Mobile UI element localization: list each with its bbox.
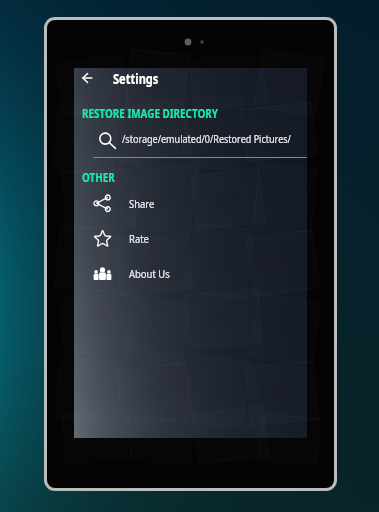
- staticText: Rate: [129, 231, 150, 246]
- button[interactable]: Rate: [74, 221, 307, 255]
- staticText: /storage/emulated/0/Restored Pictures/: [122, 132, 306, 146]
- staticText: OTHER: [82, 170, 115, 186]
- staticText: RESTORE IMAGE DIRECTORY: [82, 106, 219, 122]
- button[interactable]: /storage/emulated/0/Restored Pictures/: [93, 127, 307, 151]
- staticText: Share: [129, 196, 155, 211]
- staticText: About Us: [129, 266, 170, 281]
- button[interactable]: About Us: [74, 256, 307, 290]
- button[interactable]: Share: [74, 186, 307, 220]
- staticText: Settings: [113, 70, 159, 88]
- button[interactable]: Back: [79, 68, 95, 87]
